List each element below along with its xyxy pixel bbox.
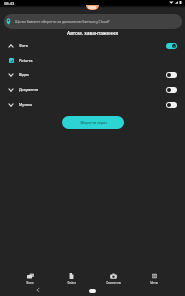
button[interactable]: Pictures [0, 53, 185, 67]
other: Search [5, 18, 12, 25]
button[interactable]: Файли [56, 273, 86, 285]
button[interactable]: Switch off [166, 87, 177, 93]
staticText: Файли [67, 281, 76, 285]
staticText: Зберегти зараз [80, 120, 107, 125]
button[interactable]: Музика [0, 97, 185, 112]
staticText: Оновлення [106, 281, 121, 285]
button[interactable]: Зберегти зараз [62, 116, 124, 129]
button[interactable]: Оновлення [98, 273, 128, 285]
staticText: Фото [19, 43, 28, 48]
staticText: 100% [88, 6, 97, 10]
staticText: Відео [19, 72, 29, 77]
staticText: Меню [150, 281, 158, 285]
staticText: Документи [19, 87, 39, 92]
button[interactable]: Back [34, 286, 42, 294]
button[interactable]: Відео [0, 67, 185, 82]
staticText: 08:43 [4, 1, 15, 6]
staticText: Що ви бажаєте зберегти за допомогою Sams… [15, 19, 110, 24]
staticText: Вікна [26, 281, 34, 285]
button[interactable]: Меню [139, 273, 169, 285]
button[interactable]: Switch on [166, 43, 177, 49]
button[interactable]: Search [4, 14, 182, 29]
button[interactable]: Вікна [15, 273, 45, 285]
staticText: Автом. завантаження [67, 30, 118, 37]
staticText: Pictures [19, 58, 33, 63]
button[interactable]: Switch off [166, 72, 177, 78]
button[interactable]: Switch off [166, 102, 177, 108]
button[interactable]: Фото [0, 38, 185, 53]
button[interactable]: Документи [0, 82, 185, 97]
staticText: Музика [19, 102, 32, 107]
